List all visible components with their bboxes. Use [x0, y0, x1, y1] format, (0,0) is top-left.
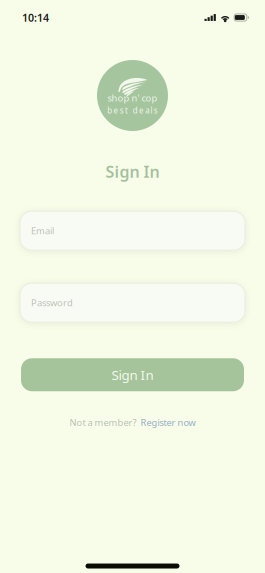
staticText: Not a member? [69, 416, 136, 429]
staticText: shop n' cop [107, 92, 157, 104]
button[interactable]: Sign In [0, 358, 265, 391]
staticText: 10:14 [22, 10, 49, 25]
staticText: Sign In [111, 366, 153, 384]
staticText: Sign In [105, 161, 159, 182]
button[interactable]: Password [20, 283, 245, 322]
button[interactable]: Not a member? [69, 416, 195, 429]
staticText: Email [31, 225, 54, 237]
staticText: Register now [140, 416, 195, 429]
button[interactable]: Email [20, 211, 245, 250]
staticText: Password [31, 297, 73, 309]
staticText: best deals [107, 105, 158, 116]
